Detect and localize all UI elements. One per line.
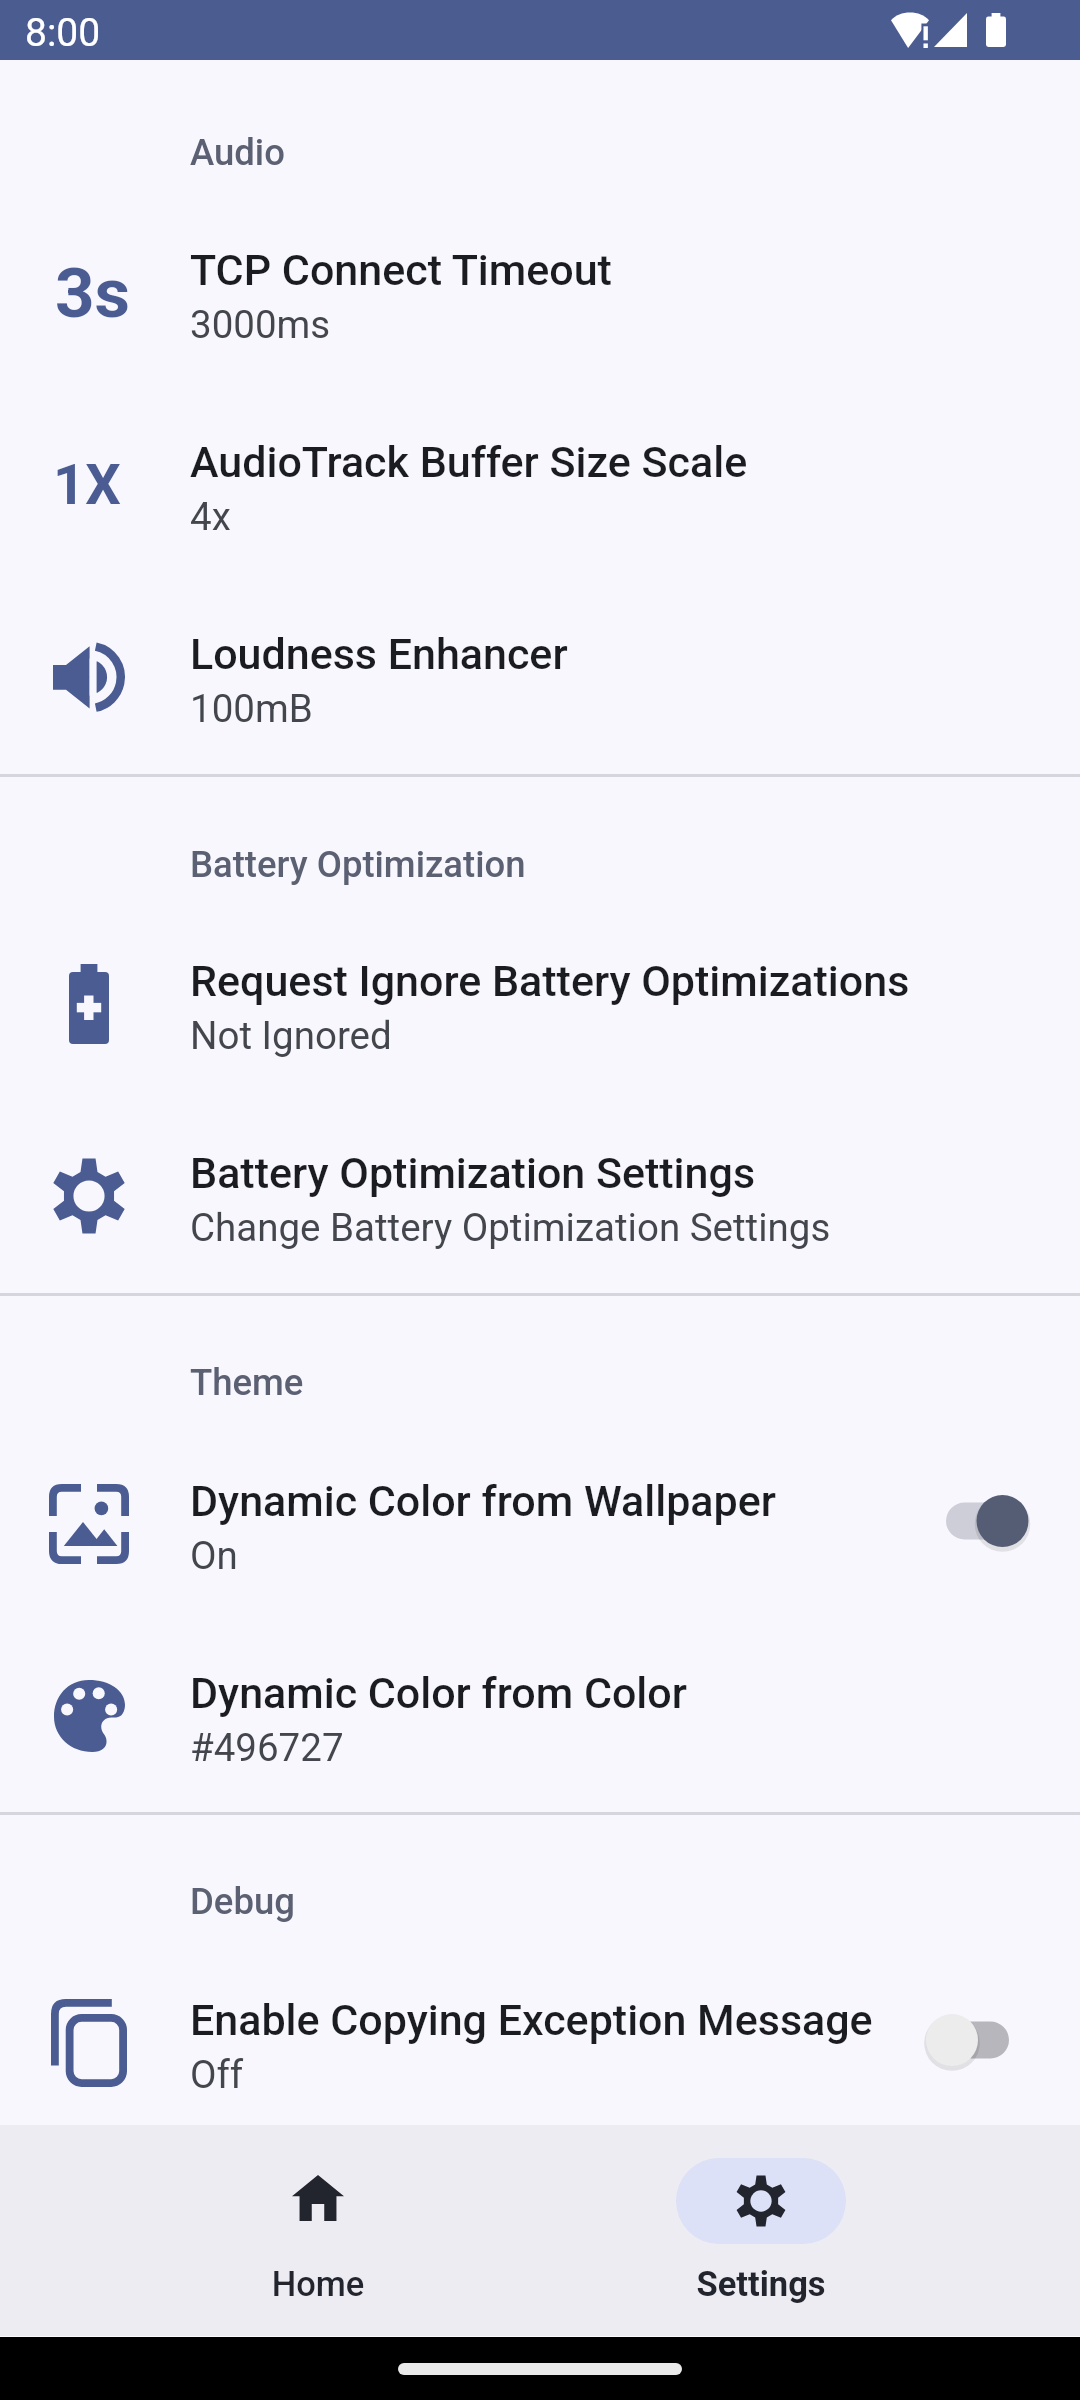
staticText: Battery Optimization <box>190 843 526 886</box>
staticText: Dynamic Color from Wallpaper <box>190 1476 1080 1526</box>
staticText: 8:00 <box>25 10 101 56</box>
button[interactable]: Dynamic Color from Color <box>0 1621 1080 1813</box>
button[interactable]: Enable Copying Exception Message <box>0 1948 1080 2140</box>
staticText: Loudness Enhancer <box>190 629 1080 679</box>
staticText: Battery Optimization Settings <box>190 1148 1080 1198</box>
staticText: 4x <box>190 494 1080 539</box>
staticText: TCP Connect Timeout <box>190 245 1080 295</box>
button[interactable]: Battery Optimization Settings <box>0 1101 1080 1293</box>
staticText: Off <box>190 2052 1080 2097</box>
staticText: 3000ms <box>190 302 1080 347</box>
button[interactable]: Settings <box>651 2140 871 2325</box>
button[interactable]: Switch off <box>916 1985 1020 2095</box>
staticText: AudioTrack Buffer Size Scale <box>190 437 1080 487</box>
staticText: Settings <box>651 2264 871 2304</box>
staticText: #496727 <box>190 1725 1080 1770</box>
staticText: Not Ignored <box>190 1013 1080 1058</box>
button[interactable]: 1X <box>0 390 1080 582</box>
staticText: 1X <box>53 452 121 518</box>
button[interactable]: 3s <box>0 198 1080 390</box>
button[interactable]: Dynamic Color from Wallpaper <box>0 1429 1080 1621</box>
staticText: On <box>190 1533 1080 1578</box>
staticText: Enable Copying Exception Message <box>190 1995 1080 2045</box>
staticText: 100mB <box>190 686 1080 731</box>
button[interactable]: Home <box>208 2140 428 2325</box>
staticText: Dynamic Color from Color <box>190 1668 1080 1718</box>
staticText: Audio <box>190 131 285 174</box>
staticText: Debug <box>190 1880 295 1923</box>
button[interactable]: Switch on <box>916 1466 1020 1576</box>
button[interactable]: Request Ignore Battery Optimizations <box>0 909 1080 1101</box>
staticText: Request Ignore Battery Optimizations <box>190 956 1080 1006</box>
staticText: Theme <box>190 1361 304 1404</box>
staticText: Home <box>208 2264 428 2304</box>
staticText: 3s <box>55 253 131 334</box>
button[interactable]: Loudness Enhancer <box>0 582 1080 774</box>
staticText: Change Battery Optimization Settings <box>190 1205 1080 1250</box>
